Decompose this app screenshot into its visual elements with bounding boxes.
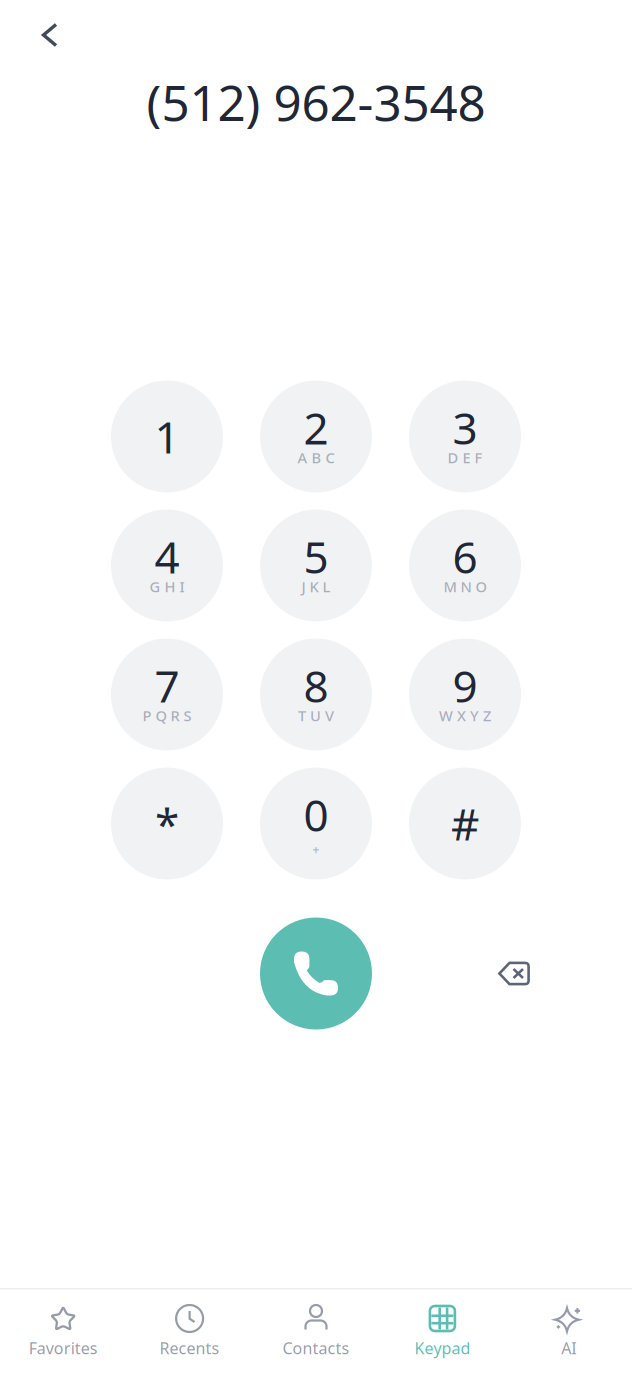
button[interactable]: * — [111, 767, 223, 879]
button[interactable]: 8 — [260, 638, 372, 750]
staticText: 8 — [303, 656, 328, 715]
button[interactable]: 5 — [260, 509, 372, 621]
staticText: T U V — [298, 706, 334, 725]
button[interactable]: 2 — [260, 380, 372, 492]
button[interactable]: 7 — [111, 638, 223, 750]
staticText: 9 — [452, 656, 477, 715]
button[interactable]: 6 — [409, 509, 521, 621]
button[interactable]: Contacts — [253, 1304, 379, 1359]
button[interactable]: Keypad — [379, 1304, 506, 1359]
staticText: Keypad — [414, 1337, 470, 1359]
staticText: * — [155, 794, 179, 853]
button[interactable]: Recents — [126, 1304, 253, 1359]
staticText: AI — [561, 1337, 576, 1359]
button[interactable]: Favorites — [0, 1304, 126, 1359]
button[interactable]: 1 — [111, 380, 223, 492]
button[interactable]: Delete — [478, 937, 550, 1009]
staticText: 0 — [303, 785, 328, 844]
staticText: A B C — [297, 448, 334, 467]
staticText: G H I — [149, 577, 184, 596]
staticText: + — [312, 841, 319, 857]
button[interactable]: 0 — [260, 767, 372, 879]
button[interactable]: 9 — [409, 638, 521, 750]
staticText: 2 — [303, 398, 328, 457]
staticText: W X Y Z — [439, 706, 491, 725]
staticText: D E F — [447, 448, 482, 467]
staticText: P Q R S — [142, 706, 191, 725]
staticText: 6 — [452, 527, 477, 586]
button[interactable]: AI — [506, 1304, 632, 1359]
staticText: 7 — [154, 656, 179, 715]
staticText: Contacts — [282, 1337, 349, 1359]
staticText: 1 — [154, 407, 179, 466]
staticText: 5 — [303, 527, 328, 586]
staticText: M N O — [443, 577, 486, 596]
staticText: (512) 962-3548 — [146, 69, 485, 134]
staticText: # — [451, 794, 479, 853]
staticText: 3 — [452, 398, 477, 457]
button[interactable]: Call — [260, 917, 372, 1029]
staticText: J K L — [301, 577, 330, 596]
staticText: Favorites — [29, 1337, 98, 1359]
button[interactable]: # — [409, 767, 521, 879]
button[interactable]: Back — [28, 12, 72, 58]
staticText: 4 — [154, 527, 179, 586]
button[interactable]: 3 — [409, 380, 521, 492]
staticText: Recents — [160, 1337, 220, 1359]
button[interactable]: 4 — [111, 509, 223, 621]
